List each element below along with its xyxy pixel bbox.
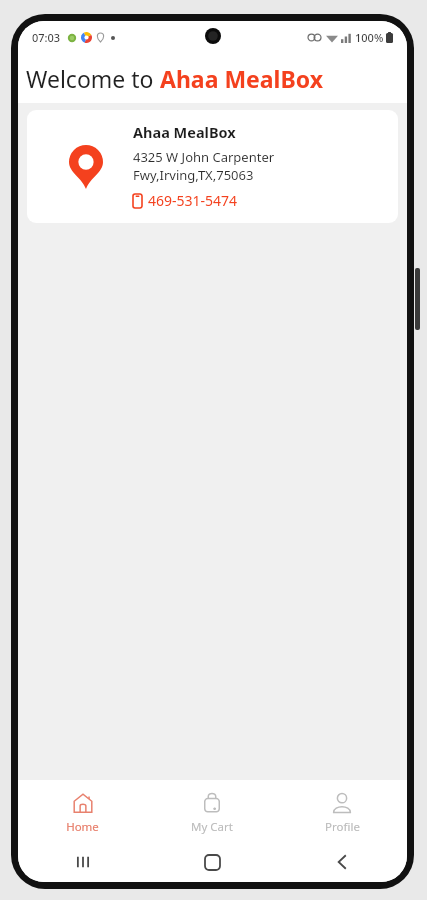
button[interactable]: Home bbox=[147, 842, 277, 882]
button[interactable]: Back bbox=[277, 842, 407, 882]
button[interactable]: Profile bbox=[277, 780, 407, 842]
staticText: Home bbox=[66, 819, 99, 835]
staticText: Fwy,Irving,TX,75063 bbox=[133, 166, 254, 184]
button[interactable]: My Cart bbox=[147, 780, 277, 842]
staticText: Welcome to bbox=[26, 63, 160, 94]
staticText: 07:03 bbox=[32, 30, 61, 45]
staticText: 469-531-5474 bbox=[148, 191, 238, 210]
button[interactable]: 469-531-5474 bbox=[133, 190, 238, 211]
button[interactable]: Ahaa MealBox bbox=[27, 110, 398, 223]
staticText: Ahaa MealBox bbox=[160, 63, 323, 94]
staticText: Ahaa MealBox bbox=[133, 122, 236, 142]
staticText: My Cart bbox=[191, 819, 233, 835]
staticText: 4325 W John Carpenter bbox=[133, 148, 275, 166]
staticText: 100% bbox=[355, 30, 384, 45]
button[interactable]: Home bbox=[18, 780, 147, 842]
button[interactable]: Recent apps bbox=[18, 842, 147, 882]
staticText: Profile bbox=[325, 819, 360, 835]
